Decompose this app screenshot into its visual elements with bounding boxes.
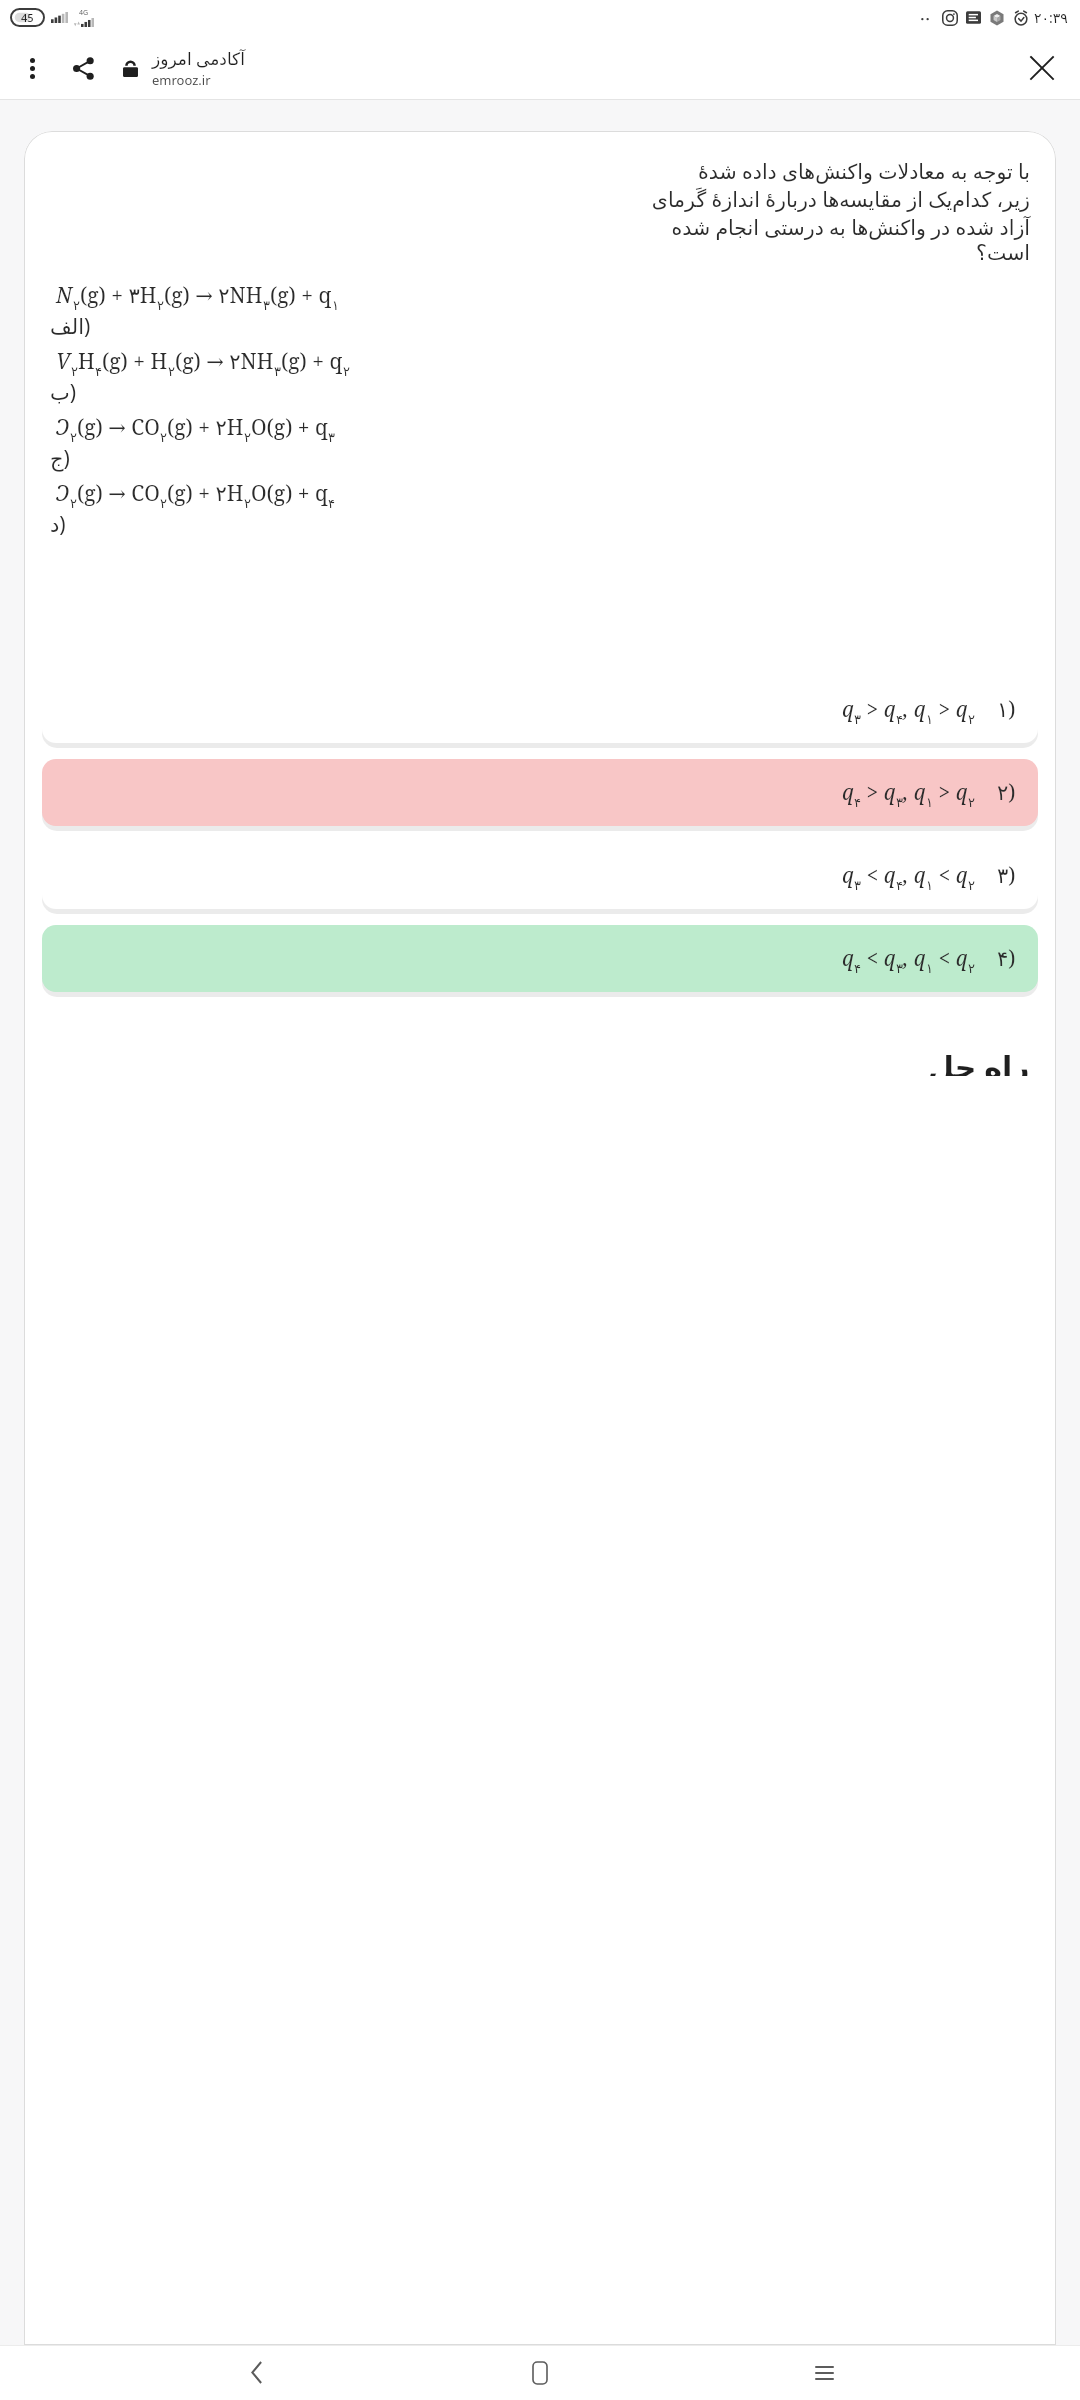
staticText: ۲ xyxy=(244,430,251,445)
staticText: Ɔ xyxy=(56,479,70,508)
staticText: V xyxy=(56,347,71,376)
staticText: > q xyxy=(933,778,968,807)
staticText: راه حل xyxy=(928,1046,1030,1076)
staticText: ۲) xyxy=(997,778,1016,807)
staticText: ۲ xyxy=(968,961,975,976)
staticText: ۲ xyxy=(968,712,975,727)
staticText: ۲ xyxy=(70,496,77,511)
button[interactable]: Recent apps xyxy=(796,2345,852,2400)
staticText: ۲ xyxy=(157,298,164,313)
staticText: (g) + q xyxy=(270,281,332,310)
staticText: O(g) + q xyxy=(251,413,328,442)
staticText: , q xyxy=(903,944,926,973)
staticText: زیر، کدام‌یک از مقایسه‌ها دربارهٔ اندازه… xyxy=(50,185,1030,213)
staticText: 4G xyxy=(79,8,89,18)
button[interactable]: q xyxy=(42,759,1038,826)
staticText: 45 xyxy=(21,10,34,25)
staticText: (g) + ۲H xyxy=(167,479,244,508)
staticText: ۴ xyxy=(328,496,335,511)
staticText: ۴ xyxy=(896,878,903,893)
button[interactable]: Home xyxy=(512,2345,568,2400)
staticText: ۳ xyxy=(328,430,335,445)
staticText: < q xyxy=(933,944,968,973)
staticText: ۴ xyxy=(95,364,102,379)
staticText: ۲ xyxy=(73,298,80,313)
staticText: > q xyxy=(861,695,896,724)
staticText: ۲ xyxy=(968,878,975,893)
staticText: ج) xyxy=(50,444,1030,473)
staticText: ۳ xyxy=(896,795,903,810)
staticText: (g) + ۲H xyxy=(167,413,244,442)
staticText: ب) xyxy=(50,378,1030,407)
button[interactable]: Secure connection xyxy=(110,48,150,88)
staticText: ۱ xyxy=(332,298,339,313)
staticText: Ɔ xyxy=(56,413,70,442)
staticText: (g) → ۲NH xyxy=(175,347,274,376)
staticText: آزاد شده در واکنش‌ها به درستی انجام شده xyxy=(50,213,1030,241)
staticText: ۳ xyxy=(854,712,861,727)
staticText: ۱ xyxy=(926,795,933,810)
staticText: ۴ xyxy=(896,712,903,727)
staticText: < q xyxy=(861,944,896,973)
staticText: ۲ xyxy=(160,430,167,445)
staticText: , q xyxy=(903,695,926,724)
staticText: ۱ xyxy=(926,878,933,893)
staticText: با توجه به معادلات واکنش‌های داده شدهٔ xyxy=(50,157,1030,185)
staticText: (g) + ۳H xyxy=(80,281,157,310)
staticText: ۲ xyxy=(343,364,350,379)
staticText: ۲ xyxy=(71,364,78,379)
staticText: ۱ xyxy=(926,961,933,976)
button[interactable]: q xyxy=(42,925,1038,992)
staticText: (g) → ۲NH xyxy=(164,281,263,310)
button[interactable]: q xyxy=(42,842,1038,909)
staticText: (g) + H xyxy=(102,347,168,376)
staticText: , q xyxy=(903,778,926,807)
button[interactable]: q xyxy=(42,676,1038,743)
staticText: emrooz.ir xyxy=(152,71,211,89)
staticText: N xyxy=(56,281,73,310)
staticText: الف) xyxy=(50,312,1030,341)
staticText: ۴) xyxy=(997,944,1016,973)
staticText: است؟ xyxy=(50,241,1030,265)
staticText: ۳ xyxy=(274,364,281,379)
button[interactable]: Close xyxy=(1016,42,1068,94)
staticText: q xyxy=(842,944,854,973)
staticText: q xyxy=(842,861,854,890)
staticText: ۳ xyxy=(263,298,270,313)
staticText: O(g) + q xyxy=(251,479,328,508)
staticText: ۱ xyxy=(926,712,933,727)
staticText: ۱) xyxy=(997,695,1016,724)
staticText: > q xyxy=(861,778,896,807)
staticText: (g) → CO xyxy=(77,413,160,442)
button[interactable]: Share xyxy=(60,45,106,91)
staticText: q xyxy=(842,778,854,807)
staticText: (g) → CO xyxy=(77,479,160,508)
staticText: ۳ xyxy=(854,878,861,893)
staticText: آکادمی امروز xyxy=(152,47,245,70)
staticText: ۳) xyxy=(997,861,1016,890)
staticText: ۳ xyxy=(896,961,903,976)
staticText: q xyxy=(842,695,854,724)
staticText: ۴ xyxy=(854,961,861,976)
staticText: < q xyxy=(933,861,968,890)
staticText: ۲ xyxy=(70,430,77,445)
staticText: < q xyxy=(861,861,896,890)
staticText: ۲ xyxy=(244,496,251,511)
staticText: H xyxy=(78,347,95,376)
staticText: > q xyxy=(933,695,968,724)
staticText: ۲۰:۳۹ xyxy=(1034,8,1068,27)
button[interactable]: Back xyxy=(228,2345,284,2400)
staticText: , q xyxy=(903,861,926,890)
staticText: ۲ xyxy=(168,364,175,379)
staticText: ۴ xyxy=(854,795,861,810)
button[interactable]: More options xyxy=(10,46,54,90)
staticText: (g) + q xyxy=(281,347,343,376)
staticText: ۲ xyxy=(968,795,975,810)
staticText: ۲ xyxy=(160,496,167,511)
staticText: د) xyxy=(50,510,1030,539)
